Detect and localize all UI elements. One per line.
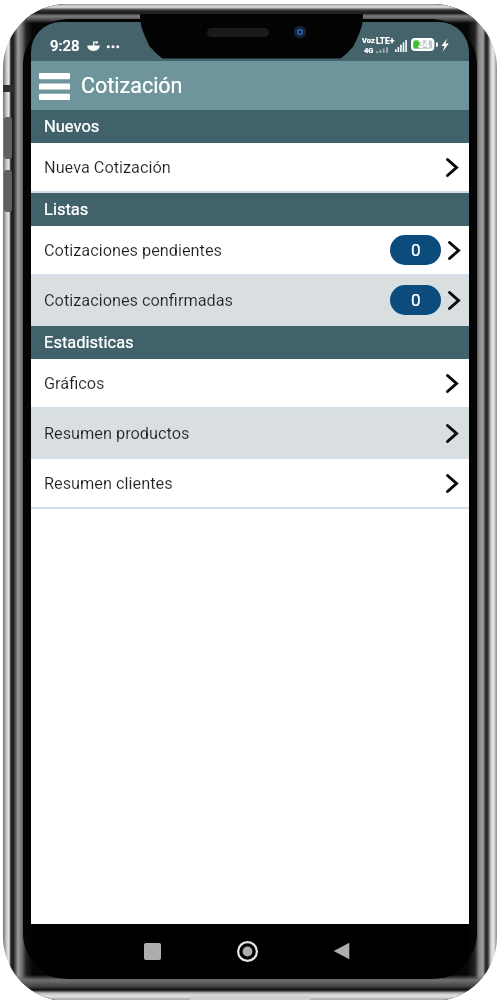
button[interactable]: Back xyxy=(321,931,361,971)
staticText: Resumen clientes xyxy=(44,474,173,493)
button[interactable]: Home xyxy=(227,931,267,971)
staticText: Cotizaciones confirmadas xyxy=(44,291,234,310)
staticText: Cotizaciones pendientes xyxy=(44,241,223,260)
staticText: 0 xyxy=(411,290,421,310)
staticText: Voz xyxy=(362,36,375,45)
staticText: Nueva Cotización xyxy=(44,158,171,177)
button[interactable]: Cotizaciones pendientes xyxy=(31,226,469,276)
staticText: Gráficos xyxy=(44,374,105,393)
button[interactable]: Nueva Cotización xyxy=(31,143,469,193)
staticText: Resumen productos xyxy=(44,424,190,443)
button[interactable]: Gráficos xyxy=(31,359,469,409)
staticText: Estadisticas xyxy=(44,333,134,352)
button[interactable]: Cotizaciones confirmadas xyxy=(31,276,469,326)
staticText: 34 xyxy=(418,39,430,51)
staticText: 0 xyxy=(411,240,421,260)
staticText: Nuevos xyxy=(44,117,100,136)
staticText: 9:28 xyxy=(50,37,80,55)
button[interactable]: Menu xyxy=(33,65,75,107)
button[interactable]: Recent apps xyxy=(132,931,172,971)
staticText: Listas xyxy=(44,200,89,219)
staticText: Cotización xyxy=(81,73,183,98)
button[interactable]: Resumen clientes xyxy=(31,459,469,509)
staticText: 4G xyxy=(364,46,374,53)
staticText: LTE+ xyxy=(376,36,395,46)
button[interactable]: Resumen productos xyxy=(31,409,469,459)
